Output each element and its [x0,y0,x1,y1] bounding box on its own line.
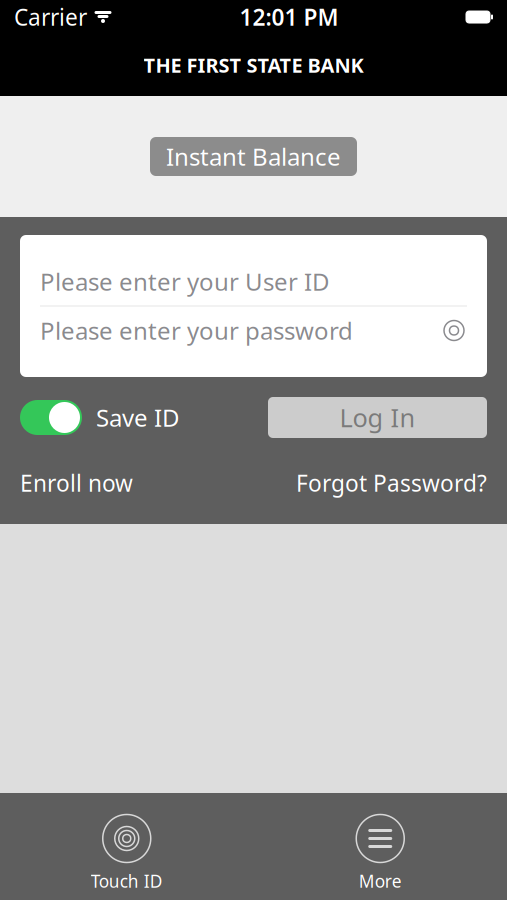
staticText: Log In [339,401,415,434]
button[interactable]: Instant Balance [150,137,357,176]
button[interactable]: Log In [268,397,487,438]
staticText: Carrier [14,2,87,32]
button[interactable]: Forgot Password? [296,468,487,498]
staticText: More [359,869,402,892]
staticText: Instant Balance [166,141,341,172]
staticText: Forgot Password? [296,468,487,498]
staticText: THE FIRST STATE BANK [143,52,363,78]
button[interactable]: Enroll now [20,468,133,498]
staticText: Touch ID [91,869,163,892]
staticText: Save ID [96,402,180,433]
button[interactable]: Save ID [20,400,180,435]
button[interactable]: Show password [441,320,467,340]
staticText: Enroll now [20,468,133,498]
staticText: Please enter your User ID [40,266,330,297]
button[interactable]: Touch ID [67,814,187,892]
staticText: 12:01 PM [239,2,338,32]
staticText: Please enter your password [40,315,353,346]
button[interactable]: More [320,814,440,892]
